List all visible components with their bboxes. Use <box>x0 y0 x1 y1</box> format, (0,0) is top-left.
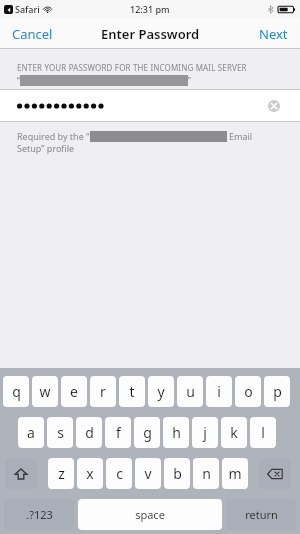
staticText: h <box>172 423 181 442</box>
button[interactable]: u <box>177 376 203 407</box>
staticText: k <box>230 423 238 442</box>
button[interactable]: q <box>3 376 29 407</box>
staticText: Required by the “ <box>17 130 90 142</box>
button[interactable]: b <box>164 458 190 489</box>
staticText: ENTER YOUR PASSWORD FOR THE INCOMING MAI… <box>17 62 247 73</box>
staticText: return <box>245 507 278 522</box>
button[interactable]: k <box>221 417 247 448</box>
staticText: ” <box>188 75 191 86</box>
staticText: v <box>144 464 152 483</box>
staticText: .?123 <box>26 507 53 522</box>
staticText: l <box>261 423 265 442</box>
button[interactable]: c <box>106 458 132 489</box>
button[interactable]: j <box>192 417 218 448</box>
staticText: u <box>186 382 195 401</box>
button[interactable]: d <box>76 417 102 448</box>
button[interactable]: s <box>47 417 73 448</box>
button[interactable]: x <box>77 458 103 489</box>
staticText: Cancel <box>12 25 53 42</box>
staticText: y <box>157 382 165 401</box>
staticText: Setup” profile <box>17 142 75 154</box>
button[interactable]: .?123 <box>4 499 74 530</box>
staticText: o <box>244 382 253 401</box>
button[interactable]: i <box>206 376 232 407</box>
staticText: z <box>58 464 65 483</box>
staticText: x <box>86 464 94 483</box>
button[interactable]: f <box>105 417 131 448</box>
staticText: p <box>273 382 282 401</box>
button[interactable]: Backspace <box>259 458 291 489</box>
button[interactable]: return <box>226 499 296 530</box>
button[interactable]: Clear text <box>0 89 300 122</box>
button[interactable]: a <box>18 417 44 448</box>
button[interactable]: y <box>148 376 174 407</box>
button[interactable]: g <box>134 417 160 448</box>
staticText: 12:31 pm <box>130 3 170 15</box>
button[interactable]: l <box>250 417 276 448</box>
button[interactable]: r <box>90 376 116 407</box>
button[interactable]: Next <box>247 18 300 49</box>
staticText: d <box>85 423 94 442</box>
button[interactable]: z <box>48 458 74 489</box>
staticText: t <box>129 382 135 401</box>
button[interactable]: n <box>193 458 219 489</box>
staticText: Enter Password <box>101 25 200 43</box>
staticText: e <box>70 382 78 401</box>
staticText: s <box>57 423 64 442</box>
button[interactable]: space <box>78 499 222 530</box>
button[interactable]: v <box>135 458 161 489</box>
staticText: q <box>12 382 21 401</box>
staticText: n <box>202 464 211 483</box>
staticText: space <box>135 507 165 522</box>
staticText: j <box>203 423 207 442</box>
staticText: Next <box>259 25 288 42</box>
staticText: b <box>173 464 182 483</box>
button[interactable]: p <box>264 376 290 407</box>
button[interactable]: Clear text <box>266 98 282 114</box>
staticText: c <box>116 464 123 483</box>
staticText: m <box>228 464 242 483</box>
staticText: “ <box>17 75 20 86</box>
button[interactable]: h <box>163 417 189 448</box>
button[interactable]: t <box>119 376 145 407</box>
staticText: f <box>116 423 121 442</box>
button[interactable]: m <box>222 458 248 489</box>
staticText: g <box>143 423 152 442</box>
staticText: w <box>39 382 51 401</box>
button[interactable]: Shift <box>5 458 37 489</box>
button[interactable]: Cancel <box>0 18 65 49</box>
button[interactable]: e <box>61 376 87 407</box>
staticText: a <box>27 423 35 442</box>
staticText: r <box>100 382 106 401</box>
button[interactable]: w <box>32 376 58 407</box>
staticText: i <box>217 382 221 401</box>
staticText: Safari <box>15 3 40 15</box>
button[interactable]: o <box>235 376 261 407</box>
staticText: Email <box>229 130 253 142</box>
